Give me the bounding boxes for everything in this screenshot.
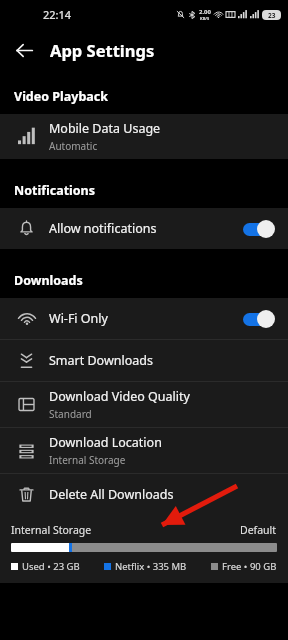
staticText: 2.00: [199, 8, 211, 16]
button[interactable]: Delete All Downloads: [0, 474, 288, 515]
staticText: App Settings: [50, 39, 155, 61]
button[interactable]: Back: [6, 32, 42, 68]
button[interactable]: Allow notifications: [0, 208, 288, 249]
button[interactable]: Smart Downloads: [0, 340, 288, 381]
staticText: 22:14: [43, 7, 72, 22]
button[interactable]: Wi-Fi Only: [0, 298, 288, 339]
button[interactable]: Toggle on: [242, 308, 277, 330]
button[interactable]: Download Location: [0, 428, 288, 473]
staticText: Netflix • 335 MB: [115, 560, 187, 573]
staticText: Mobile Data Usage: [49, 120, 161, 137]
staticText: Standard: [49, 407, 92, 421]
staticText: Smart Downloads: [49, 352, 153, 369]
staticText: Download Location: [49, 434, 162, 451]
staticText: Internal Storage: [11, 523, 92, 537]
staticText: Notifications: [14, 182, 96, 199]
staticText: 23: [268, 11, 276, 20]
button[interactable]: Download Video Quality: [0, 382, 288, 427]
staticText: Used • 23 GB: [22, 560, 80, 573]
button[interactable]: Mobile Data Usage: [0, 114, 288, 159]
staticText: Allow notifications: [49, 220, 157, 237]
staticText: Delete All Downloads: [49, 486, 174, 503]
staticText: Download Video Quality: [49, 388, 190, 405]
staticText: Wi-Fi Only: [49, 310, 108, 327]
staticText: Free • 90 GB: [222, 560, 277, 573]
staticText: Automatic: [49, 139, 98, 153]
staticText: Downloads: [14, 272, 83, 289]
button[interactable]: Toggle on: [242, 218, 277, 240]
staticText: KB/S: [200, 16, 210, 21]
staticText: Default: [240, 523, 277, 537]
staticText: Internal Storage: [49, 453, 126, 467]
staticText: Video Playback: [14, 88, 108, 105]
